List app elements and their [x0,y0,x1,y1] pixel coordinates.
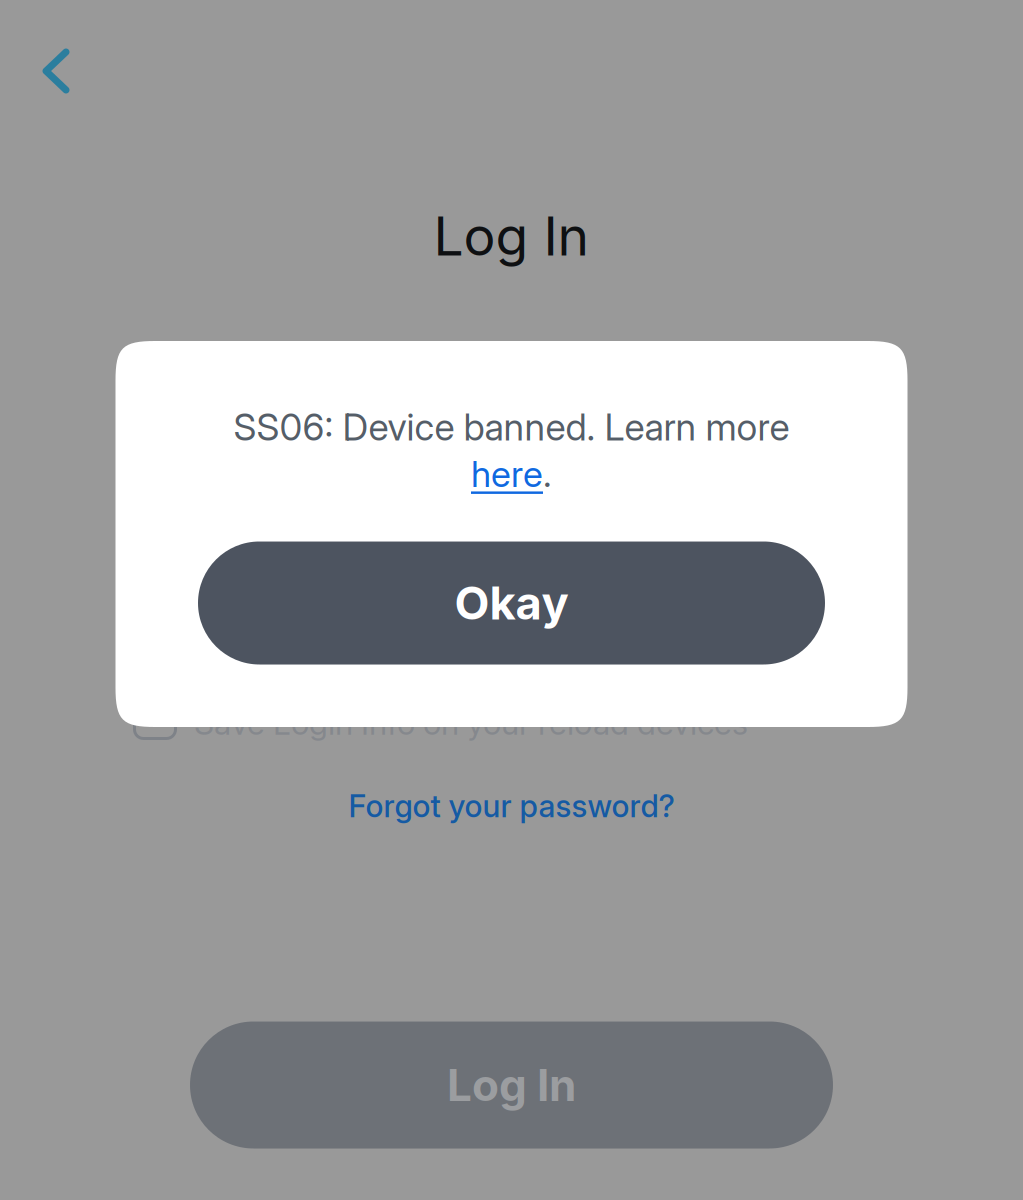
staticText: Log In [447,1058,576,1112]
staticText: Forgot your password? [348,787,674,824]
button[interactable]: Log In [190,1021,833,1148]
staticText: SS06: Device banned. Learn more [233,405,789,449]
button[interactable]: Back [10,25,102,117]
staticText: Log In [433,204,589,268]
button[interactable]: Forgot your password? [301,774,721,838]
button[interactable]: Save Login Info on your reload devices [131,694,179,742]
staticText: . [543,452,552,496]
staticText: Save Login Info on your reload devices [194,704,748,742]
button[interactable]: Okay [198,541,825,664]
button[interactable]: here [471,452,543,496]
staticText: here [471,452,543,496]
staticText: Okay [454,576,568,630]
